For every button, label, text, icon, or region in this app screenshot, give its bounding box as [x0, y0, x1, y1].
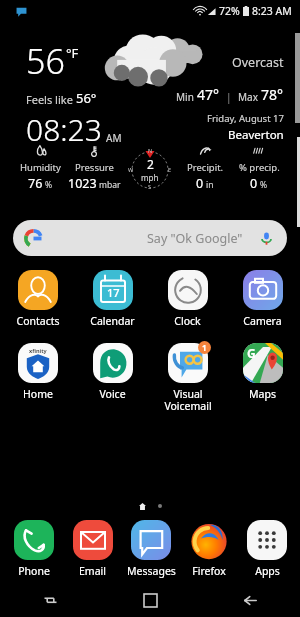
staticText: 2	[147, 156, 154, 172]
staticText: Pressure	[75, 161, 114, 174]
staticText: 8:23 AM	[252, 4, 292, 18]
button[interactable]: Firefox	[180, 520, 238, 578]
button[interactable]: Phone	[4, 520, 63, 578]
staticText: Messages	[127, 564, 176, 578]
staticText: N	[148, 147, 153, 154]
staticText: 0	[196, 175, 204, 192]
button[interactable]: 1	[150, 343, 225, 413]
staticText: Min	[176, 90, 197, 104]
button[interactable]: xfinity	[0, 343, 75, 401]
staticText: mbar	[99, 179, 121, 191]
staticText: Beaverton	[228, 127, 284, 143]
staticText: 72%	[219, 4, 240, 18]
staticText: Max	[238, 90, 261, 104]
staticText: Feels like	[26, 92, 76, 107]
staticText: Apps	[255, 564, 280, 578]
staticText: W	[128, 166, 134, 173]
staticText: 78°	[261, 85, 284, 104]
button[interactable]: Camera	[225, 270, 300, 328]
button[interactable]: Say "Ok Google"	[13, 220, 287, 256]
staticText: |	[220, 89, 238, 104]
staticText: AM	[106, 131, 122, 145]
button[interactable]: Contacts	[0, 270, 75, 328]
button[interactable]: 56	[0, 22, 300, 212]
button[interactable]: Recents	[0, 584, 100, 617]
staticText: 76	[28, 175, 43, 192]
staticText: mph	[141, 172, 159, 183]
staticText: %	[260, 179, 268, 191]
staticText: Humidity	[20, 161, 61, 174]
staticText: Overcast	[232, 54, 284, 71]
staticText: Say "Ok Google"	[147, 230, 243, 247]
staticText: Email	[79, 564, 106, 578]
staticText: Phone	[18, 564, 50, 578]
button[interactable]: Back	[200, 584, 300, 617]
staticText: Friday, August 17	[207, 112, 284, 125]
button[interactable]: Voice	[75, 343, 150, 401]
button[interactable]: Home	[100, 584, 200, 617]
staticText: 1023	[68, 175, 97, 192]
staticText: 08:23	[26, 109, 102, 150]
button[interactable]: G	[225, 343, 300, 401]
staticText: S	[148, 183, 152, 190]
staticText: Firefox	[192, 564, 226, 578]
staticText: xfinity	[29, 347, 47, 354]
staticText: in	[206, 179, 214, 191]
staticText: 47°	[197, 85, 220, 104]
staticText: Clock	[174, 314, 201, 328]
staticText: 17	[107, 285, 120, 300]
staticText: 0	[250, 175, 258, 192]
button[interactable]: Apps	[238, 520, 296, 578]
staticText: Calendar	[90, 314, 135, 328]
button[interactable]: 17	[75, 270, 150, 328]
button[interactable]: Messages	[122, 520, 180, 578]
staticText: Visual Voicemail	[164, 387, 212, 413]
staticText: G	[247, 345, 256, 361]
staticText: % precip.	[239, 161, 280, 174]
staticText: Contacts	[16, 314, 60, 328]
staticText: Home	[23, 387, 53, 401]
staticText: Maps	[249, 387, 276, 401]
button[interactable]: Clock	[150, 270, 225, 328]
staticText: Voice	[99, 387, 126, 401]
staticText: Camera	[243, 314, 282, 328]
staticText: 56°	[76, 89, 97, 107]
staticText: 1	[202, 342, 207, 353]
staticText: Precipit.	[187, 161, 224, 174]
staticText: 56	[26, 38, 65, 84]
staticText: E	[168, 166, 172, 173]
staticText: °F	[66, 44, 79, 62]
button[interactable]: Email	[63, 520, 122, 578]
staticText: %	[45, 179, 53, 191]
